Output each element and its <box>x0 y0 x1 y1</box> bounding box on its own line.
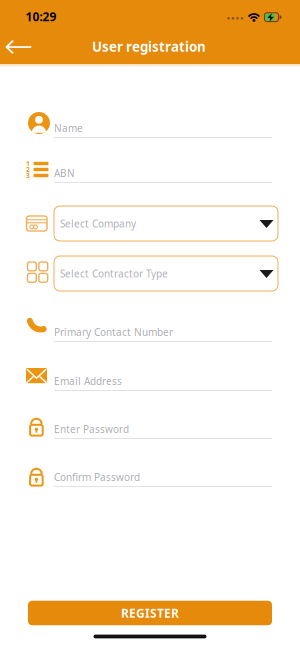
staticText: Select Company <box>60 217 136 230</box>
button[interactable]: Select Company <box>54 206 278 241</box>
staticText: Name <box>54 121 83 135</box>
button[interactable]: Back <box>0 32 36 62</box>
staticText: 2 <box>26 165 30 174</box>
staticText: User registration <box>92 38 206 55</box>
staticText: 3 <box>26 171 30 180</box>
button[interactable]: Select Contractor Type <box>54 256 278 291</box>
staticText: Confirm Password <box>54 470 140 484</box>
staticText: Enter Password <box>54 422 129 436</box>
button[interactable]: REGISTER <box>28 601 272 625</box>
staticText: REGISTER <box>121 605 179 621</box>
staticText: ABN <box>54 166 75 180</box>
staticText: Select Contractor Type <box>60 267 168 280</box>
staticText: 10:29 <box>25 8 56 24</box>
staticText: Email Address <box>54 374 122 388</box>
staticText: Primary Contact Number <box>54 325 173 339</box>
staticText: 1 <box>26 159 30 168</box>
